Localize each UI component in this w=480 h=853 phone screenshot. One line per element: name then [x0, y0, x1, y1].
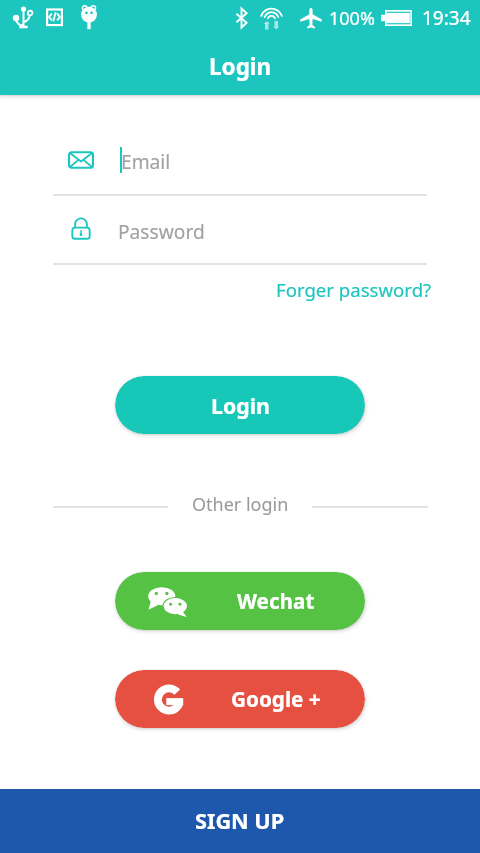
staticText: SIGN UP	[195, 806, 285, 836]
button[interactable]: Forger password?	[268, 273, 440, 306]
staticText: Password	[118, 218, 205, 244]
staticText: 19:34	[422, 5, 471, 31]
staticText: Login	[211, 391, 270, 420]
staticText: 100%	[329, 6, 375, 31]
staticText: Login	[209, 51, 272, 82]
button[interactable]: Password	[53, 203, 427, 265]
button[interactable]: Email	[53, 134, 427, 196]
staticText: Forger password?	[276, 277, 432, 302]
button[interactable]: Google +	[115, 670, 365, 728]
button[interactable]: Wechat	[115, 572, 365, 630]
staticText: Google +	[231, 685, 321, 713]
button[interactable]: Login	[115, 376, 365, 434]
staticText: Email	[121, 148, 171, 174]
staticText: Other login	[192, 492, 289, 517]
staticText: Wechat	[237, 587, 315, 615]
button[interactable]: SIGN UP	[0, 789, 480, 853]
